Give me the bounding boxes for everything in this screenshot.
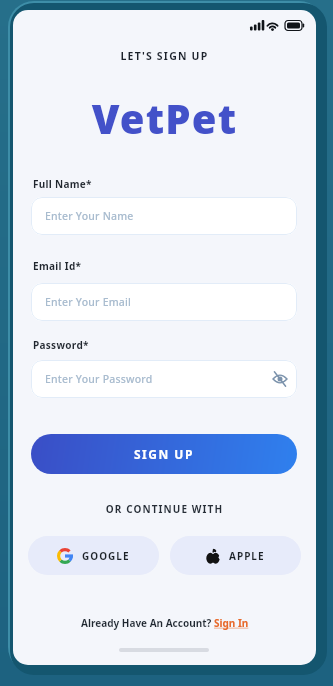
staticText: Full Name* bbox=[33, 177, 92, 191]
staticText: Enter Your Name bbox=[45, 209, 134, 223]
button[interactable]: GOOGLE bbox=[28, 536, 159, 575]
button[interactable]: Enter Your Name bbox=[31, 197, 297, 235]
staticText: Password* bbox=[33, 338, 89, 352]
staticText: SIGN UP bbox=[134, 446, 194, 462]
staticText: Enter Your Email bbox=[45, 295, 132, 309]
staticText: LET'S SIGN UP bbox=[13, 49, 316, 63]
button[interactable]: Enter Your Email bbox=[31, 283, 297, 321]
staticText: Email Id* bbox=[33, 259, 82, 273]
staticText: GOOGLE bbox=[82, 549, 130, 563]
staticText: Already Have An Account? bbox=[81, 616, 214, 630]
button[interactable]: APPLE bbox=[170, 536, 301, 575]
button[interactable]: SIGN UP bbox=[31, 434, 297, 474]
staticText: APPLE bbox=[229, 549, 265, 563]
staticText: OR CONTINUE WITH bbox=[13, 502, 316, 516]
button[interactable]: Sign In bbox=[214, 616, 249, 630]
button[interactable]: Enter Your Password bbox=[31, 360, 297, 398]
staticText: Enter Your Password bbox=[45, 372, 153, 386]
staticText: VetPet bbox=[13, 91, 316, 145]
